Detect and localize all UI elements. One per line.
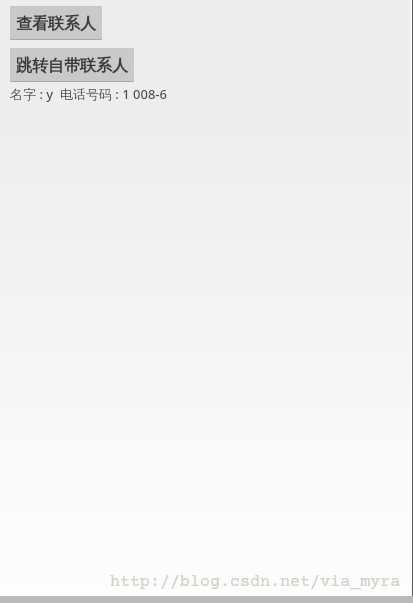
staticText: 名字 : y 电话号码 : 1 008-6 [10,85,167,103]
button[interactable]: 跳转自带联系人 [10,48,134,82]
staticText: 查看联系人 [16,14,96,34]
staticText: http://blog.csdn.net/via_myra [110,573,401,592]
button[interactable]: 查看联系人 [10,6,102,40]
staticText: 跳转自带联系人 [16,56,128,76]
